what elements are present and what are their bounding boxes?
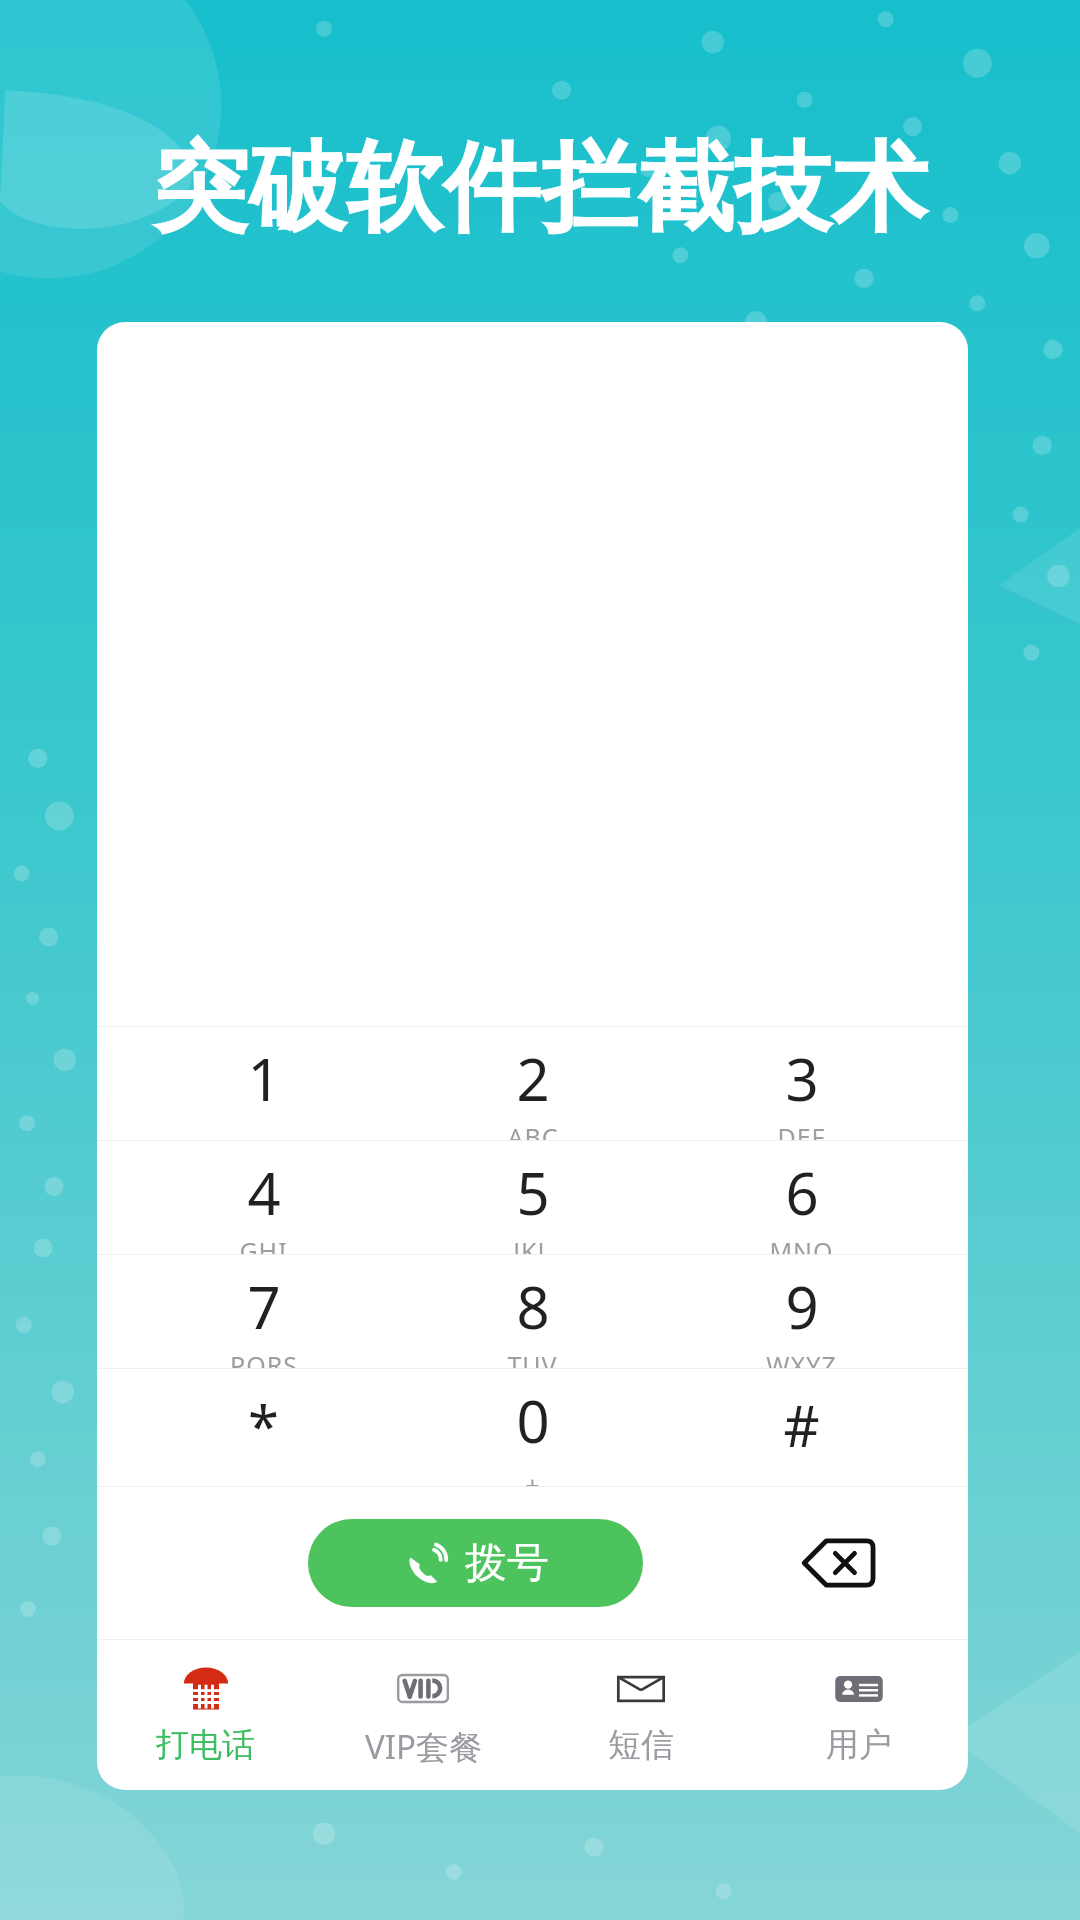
button[interactable]: 打电话 [97,1640,314,1790]
staticText: 用户 [826,1724,892,1766]
staticText: 拨号 [465,1537,549,1590]
button[interactable]: 5 [398,1141,667,1254]
button[interactable]: 短信 [532,1640,750,1790]
button[interactable]: 拨号 [308,1519,643,1607]
staticText: # [783,1387,820,1463]
staticText: JKL [513,1234,552,1254]
button[interactable]: 2 [398,1027,667,1140]
staticText: 3 [785,1039,819,1118]
staticText: TUV [507,1348,558,1368]
staticText: PQRS [230,1348,298,1368]
button[interactable]: Backspace [784,1508,894,1618]
button[interactable]: 4 [129,1141,398,1254]
button[interactable]: 8 [398,1255,667,1368]
button[interactable]: 1 [129,1027,398,1140]
staticText: 6 [785,1153,819,1232]
staticText: 打电话 [156,1724,255,1766]
button[interactable]: 用户 [750,1640,968,1790]
button[interactable]: # [667,1369,936,1486]
staticText: + [525,1468,541,1486]
staticText: 0 [516,1381,550,1460]
button[interactable]: VIP套餐 [314,1640,532,1790]
staticText: 9 [785,1267,819,1346]
button[interactable]: 7 [129,1255,398,1368]
staticText: DEF [777,1120,826,1140]
staticText: WXYZ [766,1348,837,1368]
staticText: * [248,1387,279,1463]
button[interactable]: * [129,1369,398,1486]
staticText: 突破软件拦截技术 [152,128,928,250]
staticText: ABC [507,1120,559,1140]
staticText: 2 [516,1039,550,1118]
staticText: 5 [516,1153,550,1232]
staticText: 4 [247,1153,281,1232]
staticText: 7 [247,1267,281,1346]
staticText: 8 [516,1267,550,1346]
staticText: MNO [769,1234,834,1254]
button[interactable]: 0 [398,1369,667,1486]
button[interactable]: 3 [667,1027,936,1140]
button[interactable]: 9 [667,1255,936,1368]
staticText: 短信 [608,1724,674,1766]
button[interactable]: 6 [667,1141,936,1254]
staticText: VIP套餐 [365,1724,482,1769]
staticText: GHI [239,1234,288,1254]
staticText: 1 [247,1039,281,1118]
